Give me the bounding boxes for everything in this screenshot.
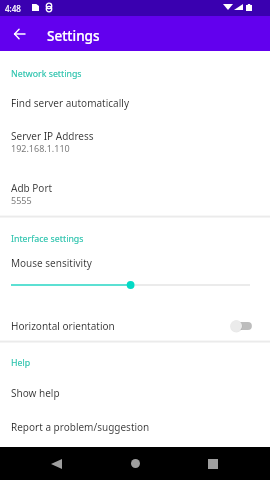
staticText: Help: [11, 357, 31, 369]
staticText: 192.168.1.110: [11, 142, 70, 154]
staticText: Find server automatically: [11, 96, 129, 110]
staticText: 5555: [11, 194, 32, 206]
button[interactable]: Server IP Address: [0, 121, 270, 156]
button[interactable]: Mouse sensitivity: [0, 246, 270, 279]
button[interactable]: Adb Port: [0, 173, 270, 208]
staticText: Network settings: [11, 68, 82, 80]
button[interactable]: Home: [118, 447, 153, 480]
button[interactable]: Back: [39, 447, 74, 480]
staticText: Adb Port: [11, 181, 53, 195]
button[interactable]: Show help: [0, 376, 270, 409]
button[interactable]: Navigate up: [2, 17, 36, 51]
staticText: Horizontal orientation: [11, 319, 115, 333]
button[interactable]: Find server automatically: [0, 86, 270, 119]
staticText: 4:48: [5, 3, 21, 14]
staticText: Show help: [11, 386, 60, 400]
button[interactable]: Horizontal orientation: [0, 317, 270, 335]
staticText: Interface settings: [11, 233, 84, 245]
staticText: Mouse sensitivity: [11, 256, 92, 270]
staticText: Settings: [47, 27, 100, 45]
staticText: Server IP Address: [11, 129, 94, 143]
button[interactable]: Report a problem/suggestion: [0, 410, 270, 443]
staticText: Report a problem/suggestion: [11, 420, 150, 434]
button[interactable]: Mouse sensitivity slider: [0, 275, 270, 295]
button[interactable]: Recent apps: [195, 447, 230, 480]
